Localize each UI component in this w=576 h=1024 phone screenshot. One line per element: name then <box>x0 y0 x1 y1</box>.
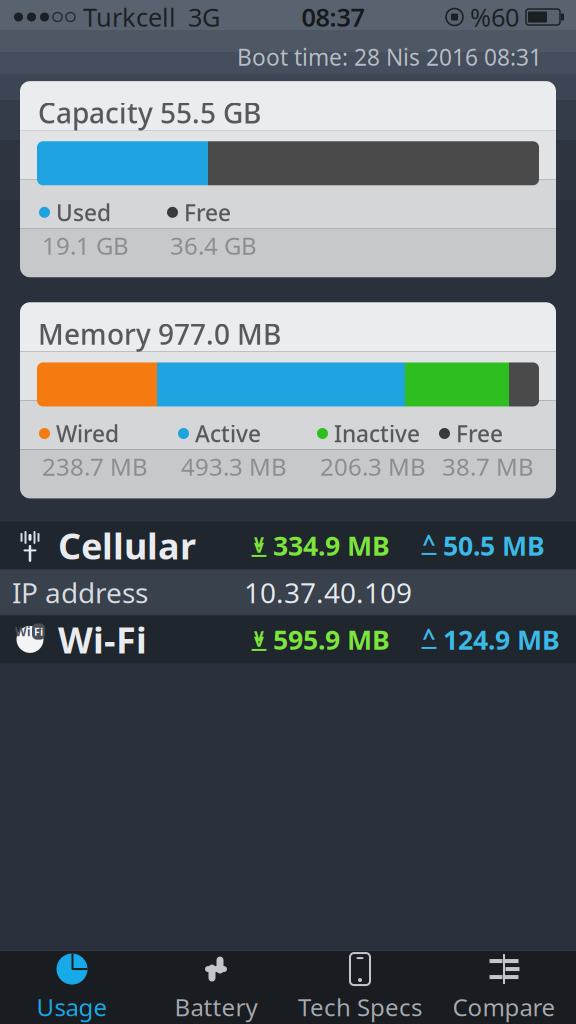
staticText: Boot time: 28 Nis 2016 08:31 <box>237 42 542 72</box>
staticText: Tech Specs <box>298 991 422 1023</box>
button[interactable]: Cellular <box>0 521 576 569</box>
staticText: 50.5 MB <box>443 528 545 563</box>
staticText: Capacity 55.5 GB <box>38 94 261 131</box>
staticText: Free <box>456 418 503 448</box>
staticText: Wi <box>15 624 31 639</box>
staticText: 238.7 MB <box>42 450 148 482</box>
button[interactable]: Tech Specs <box>288 951 432 1024</box>
staticText: 334.9 MB <box>273 528 390 563</box>
staticText: IP address <box>12 574 148 611</box>
staticText: %60 <box>470 0 519 34</box>
staticText: v <box>254 529 264 552</box>
staticText: Usage <box>36 991 107 1023</box>
staticText: Turkcell <box>83 0 176 34</box>
button[interactable]: Wi <box>0 615 576 663</box>
staticText: Memory 977.0 MB <box>38 315 281 352</box>
staticText: v <box>254 628 264 651</box>
staticText: 10.37.40.109 <box>244 574 412 611</box>
staticText: Compare <box>452 991 555 1023</box>
staticText: Inactive <box>334 418 420 448</box>
staticText: ^ <box>422 528 435 558</box>
staticText: 595.9 MB <box>273 622 390 657</box>
staticText: v <box>254 623 264 646</box>
staticText: 124.9 MB <box>443 622 560 657</box>
staticText: Free <box>184 197 231 227</box>
staticText: Wi-Fi <box>58 615 147 663</box>
staticText: Fi <box>34 624 43 639</box>
staticText: Wired <box>56 418 119 448</box>
staticText: Cellular <box>58 521 196 569</box>
staticText: Used <box>56 197 111 227</box>
staticText: 493.3 MB <box>181 450 287 482</box>
staticText: 38.7 MB <box>442 450 534 482</box>
staticText: 08:37 <box>301 0 364 34</box>
staticText: Battery <box>174 991 257 1023</box>
staticText: Active <box>195 418 261 448</box>
button[interactable]: Battery <box>144 951 288 1024</box>
staticText: ^ <box>422 622 435 652</box>
staticText: 36.4 GB <box>170 229 257 261</box>
button[interactable]: IP address <box>0 569 576 615</box>
button[interactable]: Compare <box>432 951 576 1024</box>
staticText: v <box>254 534 264 557</box>
staticText: 19.1 GB <box>42 229 129 261</box>
staticText: 3G <box>188 0 220 34</box>
button[interactable]: Usage <box>0 951 144 1024</box>
staticText: 206.3 MB <box>320 450 426 482</box>
